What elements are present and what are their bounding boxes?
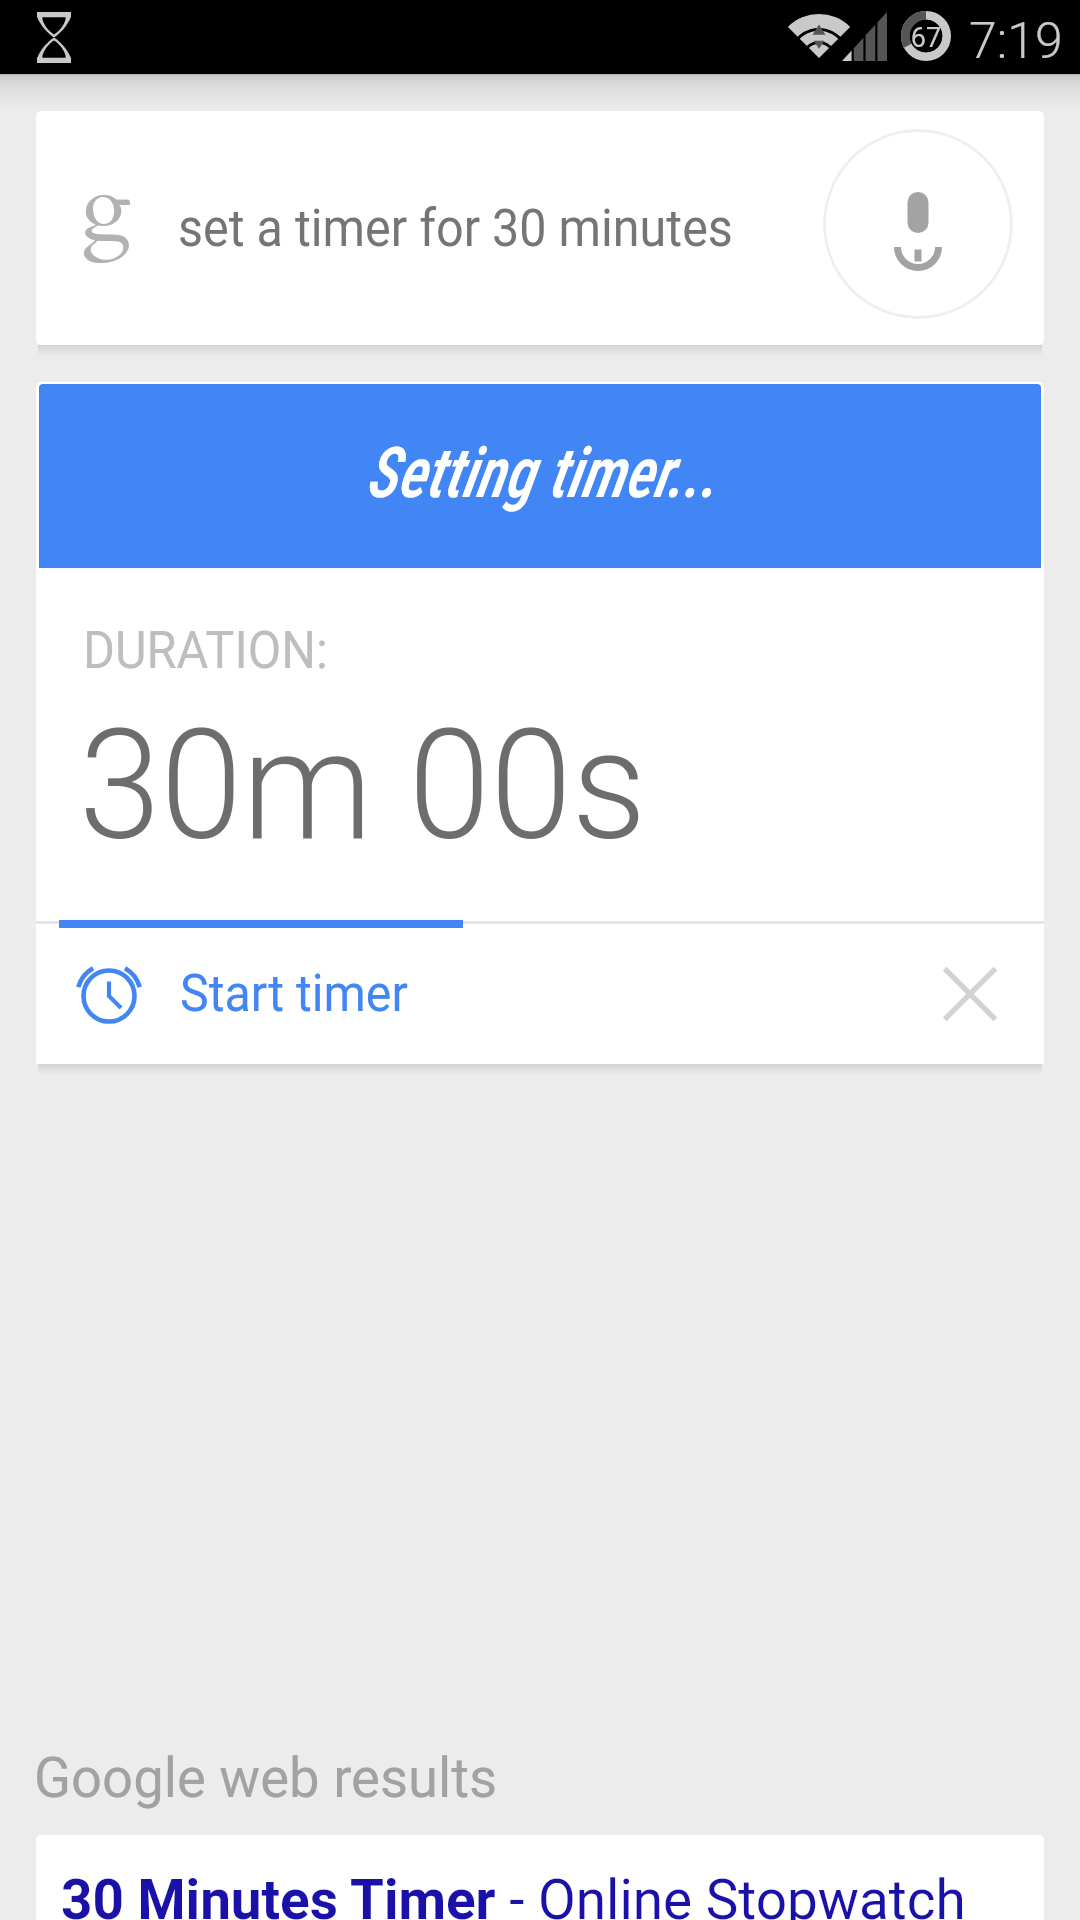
staticText: 67: [906, 22, 946, 54]
staticText: DURATION:: [83, 620, 328, 681]
staticText: 7:19: [969, 12, 1063, 71]
staticText: g: [81, 148, 131, 267]
staticText: Google web results: [34, 1745, 498, 1811]
staticText: set a timer for 30 minutes: [178, 199, 734, 259]
staticText: 30 Minutes Timer: [61, 1868, 496, 1920]
button[interactable]: Voice search: [823, 129, 1013, 319]
button[interactable]: g: [36, 111, 1044, 345]
button[interactable]: 30 Minutes Timer: [36, 1835, 1044, 1920]
staticText: 30m 00s: [79, 697, 647, 875]
staticText: Start timer: [180, 963, 408, 1024]
button[interactable]: Dismiss: [927, 951, 1013, 1037]
button[interactable]: Start timer: [36, 924, 1044, 1064]
staticText: Setting timer...: [366, 432, 717, 514]
staticText: - Online Stopwatch: [496, 1868, 966, 1920]
